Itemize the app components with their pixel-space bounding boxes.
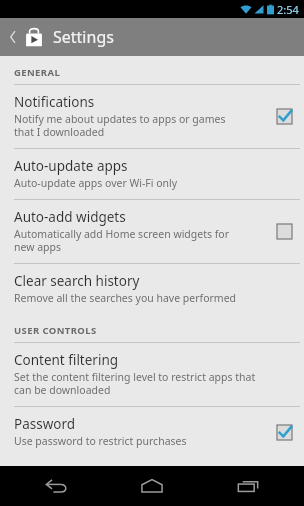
staticText: Notifications [14,93,95,111]
staticText: USER CONTROLS [14,324,97,337]
button[interactable]: Auto-update apps [0,149,304,199]
staticText: Use password to restrict purchases [14,434,187,448]
staticText: 2:54 [277,2,299,17]
button[interactable]: Back [6,25,20,49]
button[interactable]: Home [112,466,192,506]
button[interactable]: Unchecked [274,221,294,241]
staticText: Automatically add Home screen widgets fo… [14,227,230,254]
button[interactable]: Checked [274,106,294,126]
button[interactable]: Content filtering [0,343,304,406]
staticText: Set the content filtering level to restr… [14,370,256,397]
button[interactable]: Password [0,407,304,457]
button[interactable]: Clear search history [0,264,304,314]
button[interactable]: Checked [274,422,294,442]
staticText: Auto-add widgets [14,208,126,226]
staticText: Auto-update apps [14,157,128,175]
staticText: Remove all the searches you have perform… [14,291,237,305]
button[interactable]: Notifications [0,85,304,148]
staticText: Password [14,415,76,433]
staticText: Settings [53,26,114,48]
staticText: Content filtering [14,351,119,369]
button[interactable]: Back [0,18,304,56]
button[interactable]: Auto-add widgets [0,200,304,263]
button[interactable]: Back [16,466,96,506]
button[interactable]: Recent apps [208,466,288,506]
staticText: Auto-update apps over Wi-Fi only [14,176,178,190]
staticText: GENERAL [14,66,61,79]
staticText: Clear search history [14,272,140,290]
staticText: Notify me about updates to apps or games… [14,112,226,139]
